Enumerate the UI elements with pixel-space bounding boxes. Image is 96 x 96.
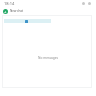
staticText: New chat: [10, 9, 24, 13]
other: Account: [88, 2, 91, 5]
button[interactable]: +: [3, 7, 96, 15]
staticText: +: [4, 9, 7, 14]
staticText: No messages: [38, 56, 59, 60]
other: Notifications: [82, 2, 85, 5]
staticText: 18:14: [4, 1, 15, 6]
